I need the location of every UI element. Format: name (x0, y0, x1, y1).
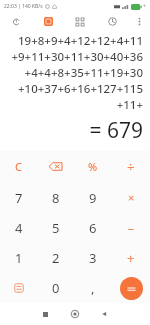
staticText: + (143, 3, 146, 10)
staticText: 1 (15, 249, 23, 267)
button[interactable]: , (74, 273, 112, 303)
button[interactable]: 4 (0, 213, 37, 243)
button[interactable]: Scientific mode (0, 273, 37, 303)
staticText: + (127, 249, 135, 267)
button[interactable]: Recents (31, 303, 60, 325)
button[interactable]: Backspace (37, 151, 74, 182)
staticText: ÷ (127, 158, 135, 176)
button[interactable]: Settings (96, 13, 128, 30)
button[interactable]: 9 (74, 182, 112, 213)
staticText: C (15, 159, 22, 174)
staticText: 6 (89, 219, 97, 237)
staticText: +10+37+6+16+127+115 (18, 81, 143, 97)
staticText: × (128, 190, 135, 205)
staticText: 19+8+9+4+12+12+4+11 (18, 33, 143, 49)
button[interactable]: Equals (120, 277, 143, 300)
button[interactable]: ÷ (112, 151, 150, 182)
button[interactable]: 1 (0, 243, 37, 273)
staticText: % (88, 159, 98, 174)
staticText: 22:03 | 140 KB/s (4, 3, 43, 10)
button[interactable]: % (74, 151, 112, 182)
button[interactable]: C (0, 151, 37, 182)
staticText: +9+11+30+11+30+40+36 (11, 49, 143, 65)
staticText: 4 (15, 219, 23, 237)
staticText: +11+ (116, 97, 143, 113)
button[interactable]: Home (60, 303, 89, 325)
staticText: 0 (52, 279, 60, 297)
button[interactable]: Back (89, 303, 118, 325)
button[interactable]: × (112, 182, 150, 213)
button[interactable]: 6 (74, 213, 112, 243)
button[interactable]: + (112, 243, 150, 273)
staticText: 7 (15, 189, 23, 207)
button[interactable]: 8 (37, 182, 74, 213)
staticText: 9 (89, 189, 97, 207)
button[interactable]: 2 (37, 243, 74, 273)
button[interactable]: 7 (0, 182, 37, 213)
staticText: 5 (52, 219, 60, 237)
staticText: 2 (52, 249, 60, 267)
staticText: 3 (89, 249, 97, 267)
staticText: – (128, 220, 135, 236)
button[interactable]: More options (128, 13, 150, 30)
staticText: +4+4+8+35+11+19+30 (24, 65, 143, 81)
button[interactable]: Converters (64, 13, 96, 30)
button[interactable]: 0 (37, 273, 74, 303)
button[interactable]: – (112, 213, 150, 243)
staticText: = 679 (89, 116, 143, 145)
button[interactable]: Calculator (32, 13, 64, 30)
button[interactable]: History (0, 13, 32, 30)
staticText: 8 (52, 189, 60, 207)
staticText: , (91, 279, 95, 297)
button[interactable]: 5 (37, 213, 74, 243)
button[interactable]: 3 (74, 243, 112, 273)
